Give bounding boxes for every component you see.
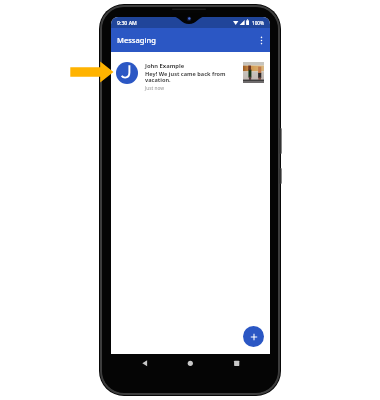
- button[interactable]: John Example: [111, 52, 270, 92]
- staticText: Just now: [145, 85, 165, 92]
- button[interactable]: More options: [257, 31, 266, 49]
- staticText: John Example: [145, 62, 185, 70]
- staticText: 9:30 AM: [117, 19, 137, 26]
- button[interactable]: New message: [243, 326, 264, 347]
- staticText: Hey! We just came back from vacation.: [145, 70, 241, 84]
- staticText: 100%: [252, 20, 265, 26]
- staticText: Messaging: [117, 35, 156, 45]
